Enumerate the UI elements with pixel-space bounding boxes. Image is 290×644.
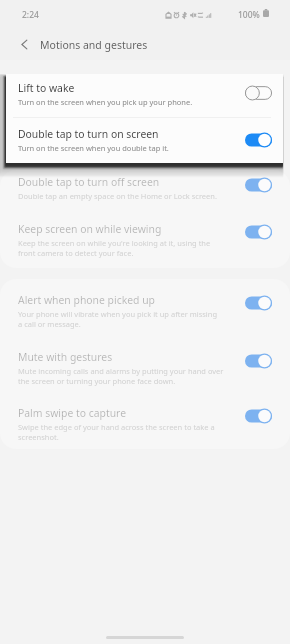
button[interactable]: Lift to wake [18, 81, 193, 107]
button[interactable]: Navigate up [10, 30, 38, 58]
button[interactable]: Double tap to turn on screen [18, 127, 169, 153]
staticText: Double tap an empty space on the Home or… [18, 191, 217, 201]
button[interactable]: Switch on [245, 132, 272, 148]
staticText: 100% [238, 9, 260, 21]
staticText: front camera to detect your face. [18, 248, 134, 258]
button[interactable]: Keep screen on while viewing [18, 222, 211, 258]
staticText: Mute with gestures [18, 350, 113, 364]
button[interactable]: Alert when phone picked up [18, 293, 218, 329]
staticText: Double tap to turn on screen [18, 127, 159, 141]
staticText: the screen or turning your phone face do… [18, 376, 176, 386]
staticText: Lift to wake [18, 81, 75, 95]
staticText: Your phone will vibrate when you pick it… [18, 309, 218, 319]
button[interactable]: Switch on [245, 408, 272, 424]
button[interactable]: Switch on [245, 224, 272, 240]
button[interactable]: Palm swipe to capture [18, 406, 215, 442]
staticText: Turn on the screen when you pick up your… [18, 97, 193, 107]
staticText: Turn on the screen when you double tap i… [18, 143, 169, 153]
staticText: Keep the screen on while you're looking … [18, 238, 211, 248]
staticText: Alert when phone picked up [18, 293, 155, 307]
staticText: Palm swipe to capture [18, 406, 127, 420]
button[interactable]: Switch off [245, 85, 272, 101]
staticText: Swipe the edge of your hand across the s… [18, 422, 215, 432]
staticText: a call or message. [18, 319, 81, 329]
button[interactable]: Switch on [245, 353, 272, 369]
staticText: Mute incoming calls and alarms by puttin… [18, 366, 224, 376]
button[interactable]: Switch on [245, 177, 272, 193]
staticText: Double tap to turn off screen [18, 175, 160, 189]
staticText: Motions and gestures [40, 38, 148, 52]
button[interactable]: Switch on [245, 295, 272, 311]
button[interactable]: Double tap to turn off screen [18, 175, 217, 201]
staticText: screenshot. [18, 432, 59, 442]
staticText: Keep screen on while viewing [18, 222, 162, 236]
button[interactable]: Mute with gestures [18, 350, 224, 386]
staticText: 2:24 [22, 9, 39, 21]
